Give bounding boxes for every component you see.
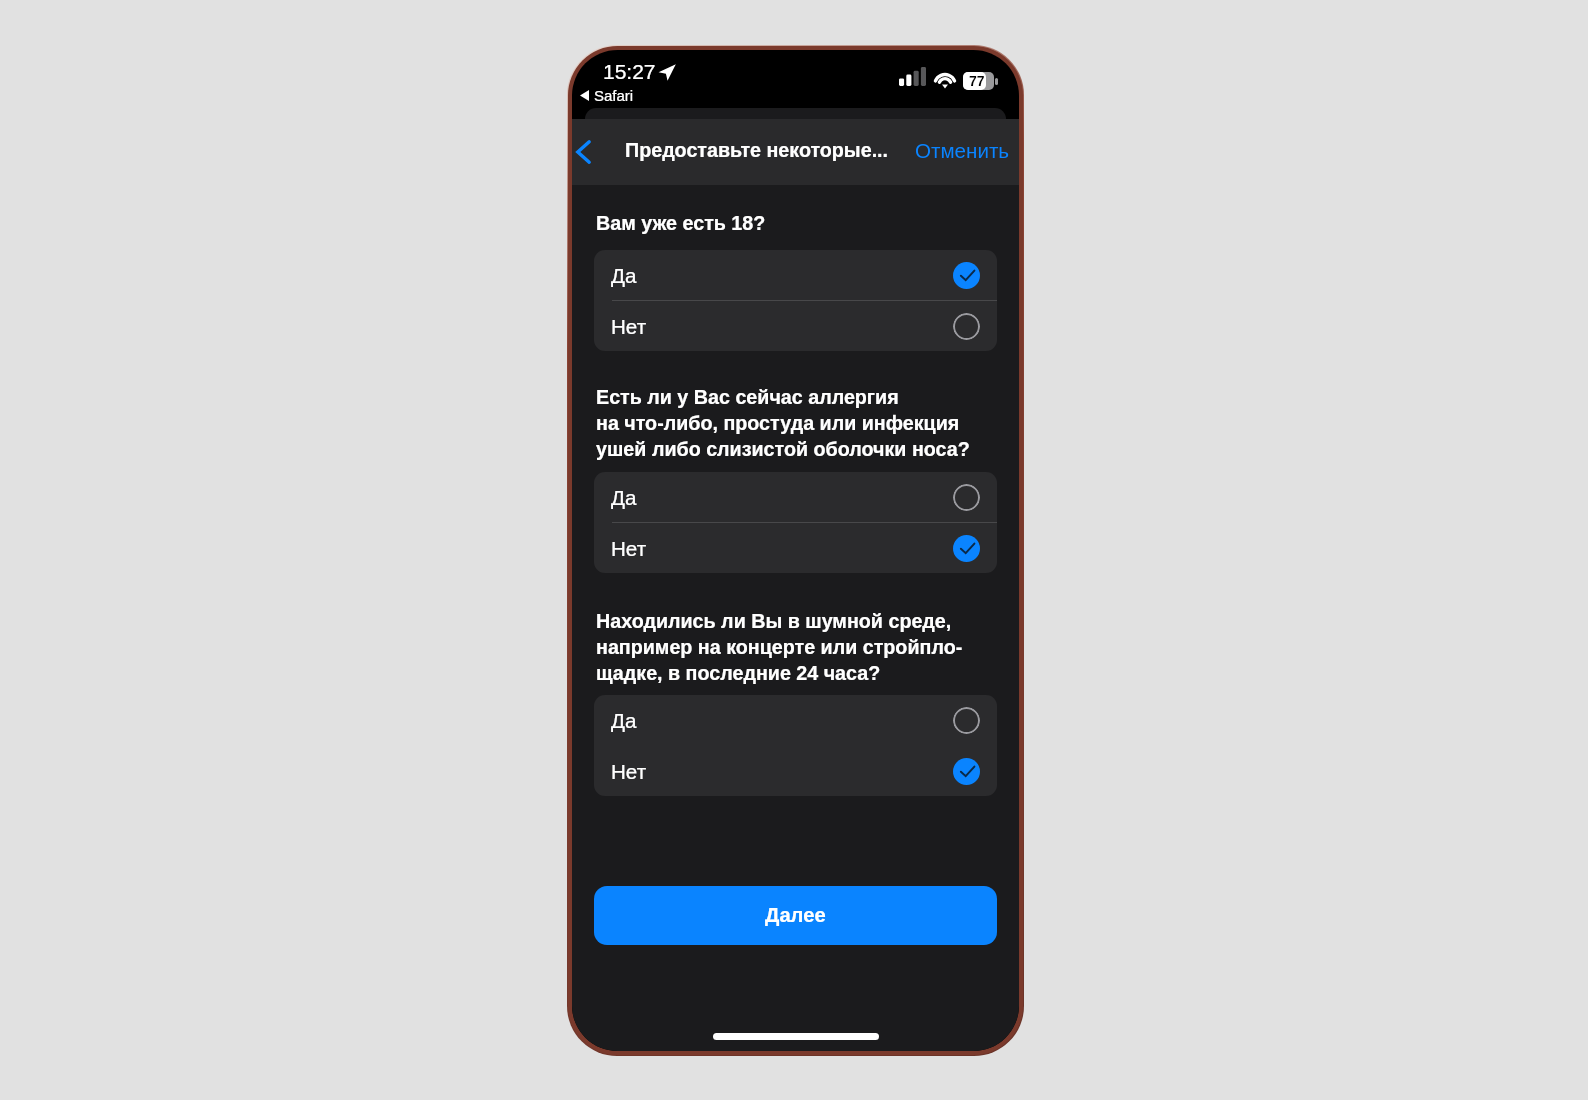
staticText: Предоставьте некоторые... — [625, 139, 889, 161]
button[interactable]: Нет — [594, 301, 997, 351]
staticText: 77 — [969, 73, 985, 89]
staticText: Отменить — [915, 139, 1010, 162]
staticText: Находились ли Вы в шумной среде, — [596, 610, 952, 632]
button[interactable]: Да — [594, 472, 997, 522]
staticText: Нет — [611, 315, 647, 338]
staticText: Далее — [765, 904, 826, 927]
button[interactable]: Отменить — [911, 129, 1019, 172]
staticText: Нет — [611, 537, 647, 560]
staticText: Нет — [611, 760, 647, 783]
button[interactable]: Да — [594, 695, 997, 745]
staticText: 15:27 — [603, 60, 656, 83]
button[interactable]: Нет — [594, 523, 997, 573]
button[interactable]: Нет — [594, 746, 997, 796]
staticText: Есть ли у Вас сейчас аллергия — [596, 386, 899, 408]
staticText: например на концерте или стройпло- — [596, 636, 963, 658]
staticText: Вам уже есть 18? — [596, 212, 766, 234]
staticText: Да — [611, 264, 637, 287]
button[interactable]: Да — [594, 250, 997, 300]
button[interactable]: Далее — [594, 886, 997, 945]
staticText: щадке, в последние 24 часа? — [596, 662, 881, 684]
staticText: Да — [611, 709, 637, 732]
staticText: Да — [611, 486, 637, 509]
button[interactable]: Back — [572, 126, 604, 178]
staticText: Safari — [594, 87, 634, 104]
staticText: на что-либо, простуда или инфекция — [596, 412, 960, 434]
staticText: ушей либо слизистой оболочки носа? — [596, 438, 970, 460]
